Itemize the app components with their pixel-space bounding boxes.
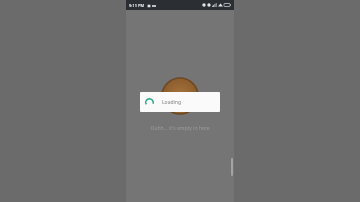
staticText: Loading: [162, 99, 181, 106]
staticText: Ouhh... it's empty in here: [132, 125, 228, 132]
staticText: 9:11 PM: [129, 3, 145, 8]
button[interactable]: Loading progress: [140, 92, 220, 112]
other: Loading progress: [145, 98, 154, 107]
